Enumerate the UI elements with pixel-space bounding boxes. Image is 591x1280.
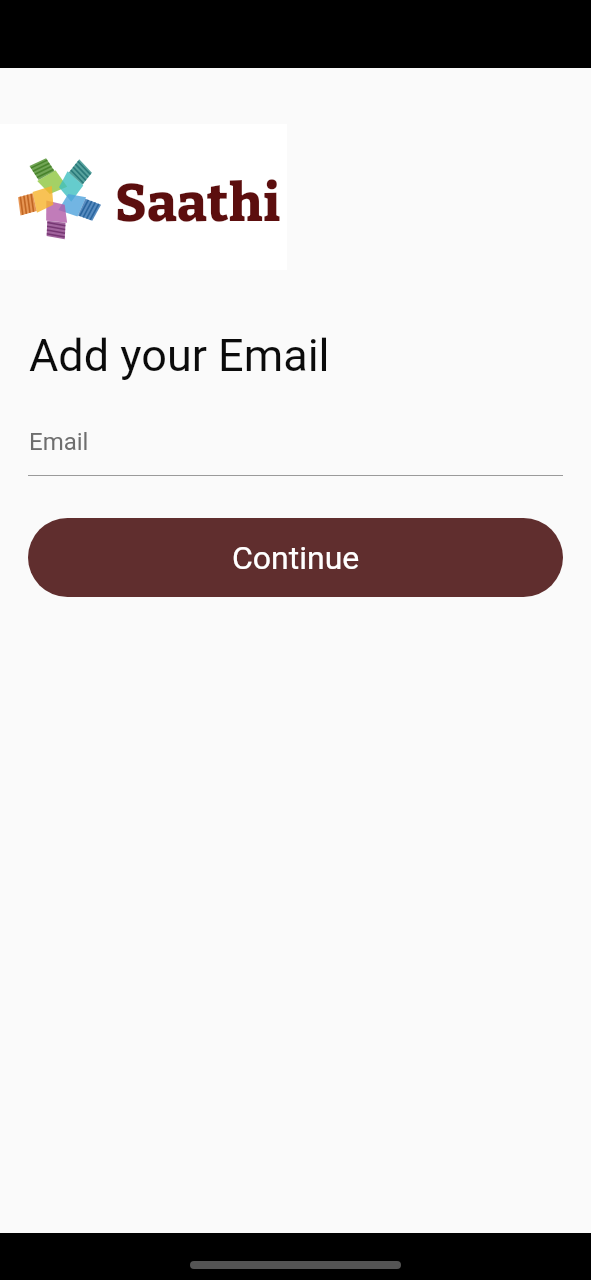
button[interactable]: Email: [28, 412, 563, 476]
staticText: Add your Email: [29, 329, 330, 382]
staticText: Email: [29, 428, 89, 456]
button[interactable]: Continue: [28, 518, 563, 597]
other: Home: [190, 1261, 401, 1269]
staticText: Continue: [232, 539, 360, 577]
